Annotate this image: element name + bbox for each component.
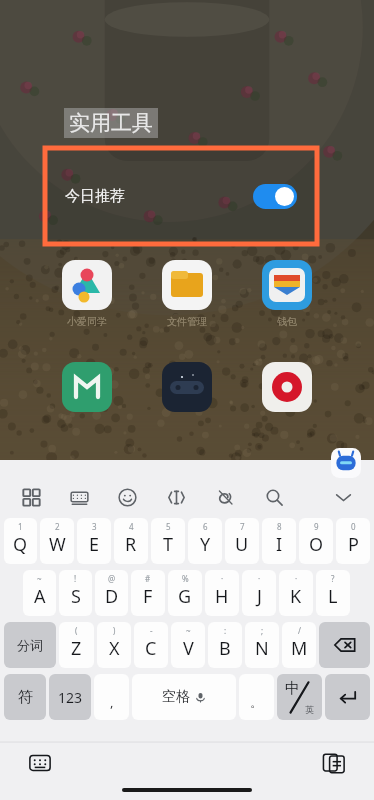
- staticText: ,: [110, 693, 114, 711]
- staticText: Z: [71, 636, 82, 661]
- button[interactable]: 空格: [132, 674, 236, 720]
- staticText: Y: [200, 532, 211, 557]
- button[interactable]: 分词: [4, 622, 56, 668]
- staticText: M: [291, 636, 308, 661]
- staticText: ?: [331, 573, 335, 584]
- staticText: Q: [13, 532, 28, 557]
- button[interactable]: 搜索: [261, 484, 287, 510]
- staticText: F: [143, 584, 153, 609]
- staticText: G: [178, 584, 192, 609]
- staticText: 符: [18, 688, 33, 707]
- button[interactable]: 5: [151, 518, 185, 564]
- button[interactable]: 收起键盘: [330, 484, 356, 510]
- staticText: L: [328, 584, 338, 609]
- button[interactable]: 最近任务: [320, 749, 348, 777]
- staticText: W: [49, 532, 66, 557]
- button[interactable]: 文件管理: [162, 260, 212, 310]
- staticText: D: [105, 584, 119, 609]
- button[interactable]: #: [131, 570, 165, 616]
- button[interactable]: 0: [336, 518, 370, 564]
- button[interactable]: /: [282, 622, 316, 668]
- staticText: B: [219, 636, 231, 661]
- button[interactable]: ·: [279, 570, 313, 616]
- staticText: X: [109, 636, 120, 661]
- staticText: 3: [92, 521, 97, 532]
- staticText: K: [290, 584, 302, 609]
- staticText: 空格: [162, 688, 190, 706]
- staticText: C: [145, 636, 157, 661]
- button[interactable]: 回车: [325, 674, 370, 720]
- button[interactable]: 3: [77, 518, 111, 564]
- staticText: /: [298, 625, 301, 636]
- staticText: V: [183, 636, 194, 661]
- staticText: A: [34, 584, 46, 609]
- staticText: 实用工具: [69, 110, 153, 136]
- staticText: H: [215, 584, 229, 609]
- button[interactable]: ~: [171, 622, 205, 668]
- button[interactable]: @: [95, 570, 128, 616]
- staticText: @: [108, 573, 116, 584]
- button[interactable]: 123: [49, 674, 91, 720]
- staticText: ~: [186, 625, 191, 636]
- button[interactable]: -: [134, 622, 168, 668]
- staticText: 英: [305, 704, 314, 715]
- button[interactable]: 8: [262, 518, 296, 564]
- staticText: %: [182, 573, 189, 584]
- button[interactable]: 切换键盘: [26, 749, 54, 777]
- button[interactable]: 今日推荐开关: [253, 184, 297, 209]
- button[interactable]: 7: [225, 518, 259, 564]
- button[interactable]: :: [208, 622, 242, 668]
- button[interactable]: 表情: [114, 484, 140, 510]
- button[interactable]: ,: [94, 674, 129, 720]
- staticText: N: [255, 636, 269, 661]
- staticText: ): [113, 625, 116, 636]
- staticText: 1: [18, 521, 23, 532]
- button[interactable]: 游戏: [162, 362, 212, 412]
- staticText: 今日推荐: [65, 187, 125, 206]
- button[interactable]: 面板: [18, 484, 44, 510]
- button[interactable]: 删除: [319, 622, 370, 668]
- staticText: R: [125, 532, 137, 557]
- staticText: 中: [285, 679, 300, 698]
- button[interactable]: 1: [4, 518, 37, 564]
- button[interactable]: 米家: [62, 362, 112, 412]
- button[interactable]: ~: [23, 570, 56, 616]
- button[interactable]: 今日推荐: [45, 148, 317, 244]
- button[interactable]: 中英切换: [277, 674, 322, 720]
- button[interactable]: 输入法助手: [331, 448, 361, 478]
- staticText: U: [235, 532, 249, 557]
- staticText: J: [257, 584, 262, 609]
- button[interactable]: 2: [40, 518, 74, 564]
- button[interactable]: 9: [299, 518, 333, 564]
- staticText: 。: [250, 694, 263, 710]
- button[interactable]: ·: [242, 570, 276, 616]
- button[interactable]: ;: [245, 622, 279, 668]
- staticText: ;: [261, 625, 264, 636]
- staticText: S: [71, 584, 81, 609]
- button[interactable]: ): [97, 622, 131, 668]
- button[interactable]: 4: [114, 518, 148, 564]
- button[interactable]: 。: [239, 674, 274, 720]
- staticText: ·: [258, 573, 261, 584]
- staticText: ·: [295, 573, 298, 584]
- button[interactable]: 符: [4, 674, 46, 720]
- button[interactable]: ·: [205, 570, 239, 616]
- button[interactable]: 键盘: [66, 484, 92, 510]
- button[interactable]: 剪贴板: [212, 484, 238, 510]
- staticText: 6: [203, 521, 208, 532]
- button[interactable]: 钱包: [262, 260, 312, 310]
- button[interactable]: ?: [316, 570, 350, 616]
- button[interactable]: 小爱同学: [62, 260, 112, 310]
- staticText: 123: [58, 688, 83, 707]
- staticText: (: [75, 625, 78, 636]
- button[interactable]: 录音: [262, 362, 312, 412]
- button[interactable]: %: [168, 570, 202, 616]
- button[interactable]: 光标: [163, 484, 189, 510]
- staticText: 钱包: [277, 315, 297, 328]
- staticText: 8: [277, 521, 282, 532]
- button[interactable]: (: [59, 622, 94, 668]
- staticText: :: [224, 625, 227, 636]
- button[interactable]: 6: [188, 518, 222, 564]
- button[interactable]: !: [59, 570, 92, 616]
- staticText: I: [276, 532, 283, 557]
